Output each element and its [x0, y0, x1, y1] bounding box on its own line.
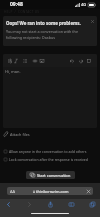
- button[interactable]: Link: [31, 54, 39, 67]
- staticText: thinkorswim.com: [36, 189, 69, 194]
- staticText: Lock conversation after the response is …: [9, 157, 88, 162]
- button[interactable]: Tabs: [84, 198, 100, 210]
- button[interactable]: More: [85, 54, 93, 67]
- staticText: 09:48: [10, 1, 23, 8]
- staticText: AA: [10, 189, 16, 194]
- staticText: You may not start a conversation with th…: [6, 29, 85, 40]
- button[interactable]: Share: [42, 198, 58, 210]
- button[interactable]: Close: [89, 18, 95, 24]
- button[interactable]: Allow anyone in the conversation to add …: [4, 149, 97, 154]
- button[interactable]: Attach files: [4, 132, 30, 137]
- staticText: 4G: [81, 2, 87, 7]
- button[interactable]: Lock conversation after the response is …: [4, 157, 97, 162]
- button[interactable]: Start conversation: [26, 171, 75, 179]
- button[interactable]: Image: [38, 54, 46, 67]
- staticText: Attach files: [10, 132, 30, 137]
- button[interactable]: AA: [7, 187, 93, 195]
- button[interactable]: Bookmarks: [63, 198, 79, 210]
- button[interactable]: Redo: [77, 54, 85, 67]
- staticText: Hi, man.: [5, 69, 21, 74]
- button[interactable]: Bold: [6, 54, 14, 67]
- button[interactable]: Italic: [12, 54, 20, 67]
- button[interactable]: Back: [0, 198, 16, 210]
- staticText: Oops! We ran into some problems.: [6, 20, 81, 26]
- staticText: Allow anyone in the conversation to add …: [9, 149, 87, 154]
- button[interactable]: Undo: [68, 54, 76, 67]
- button[interactable]: Forward: [21, 198, 37, 210]
- button[interactable]: Bullet list: [21, 54, 29, 67]
- staticText: Start conversation: [37, 173, 71, 178]
- staticText: HELP / CONTACT US: [4, 10, 40, 14]
